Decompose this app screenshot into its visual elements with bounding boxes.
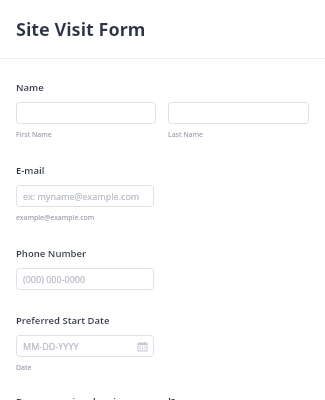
staticText: Last Name — [168, 130, 204, 140]
staticText: Phone Number — [16, 247, 87, 260]
staticText: E-mail — [16, 164, 45, 177]
button[interactable]: MM-DD-YYYY — [16, 335, 154, 357]
staticText: MM-DD-YYYY — [23, 340, 79, 352]
staticText: example@example.com — [16, 213, 95, 223]
staticText: Do you require planning approval? — [16, 395, 176, 400]
staticText: First Name — [16, 130, 52, 140]
button[interactable]: (000) 000-0000 — [16, 268, 154, 290]
other: Open calendar picker — [138, 342, 147, 351]
button[interactable]: ex: myname@example.com — [16, 185, 154, 207]
staticText: Site Visit Form — [16, 17, 146, 42]
button[interactable] — [16, 102, 156, 124]
button[interactable] — [168, 102, 309, 124]
staticText: Date — [16, 363, 32, 373]
staticText: (000) 000-0000 — [23, 273, 86, 285]
staticText: Preferred Start Date — [16, 314, 110, 327]
staticText: Name — [16, 81, 44, 94]
staticText: ex: myname@example.com — [23, 190, 140, 202]
